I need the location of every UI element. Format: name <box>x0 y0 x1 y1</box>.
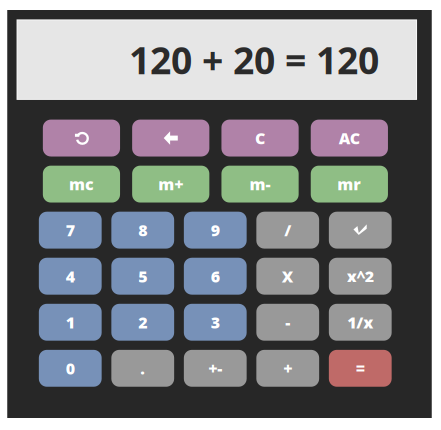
button[interactable]: x^2 <box>329 258 392 295</box>
staticText: x^2 <box>347 266 374 287</box>
staticText: = <box>356 358 365 379</box>
button[interactable]: X <box>256 258 319 295</box>
staticText: 5 <box>138 266 147 287</box>
staticText: 8 <box>138 219 147 241</box>
staticText: 2 <box>138 312 147 333</box>
button[interactable]: . <box>111 350 174 387</box>
button[interactable]: mc <box>43 166 120 203</box>
button[interactable]: 1/x <box>329 304 392 341</box>
button[interactable]: 0 <box>39 350 102 387</box>
button[interactable]: + <box>256 350 319 387</box>
staticText: mr <box>337 173 361 195</box>
staticText: 3 <box>211 312 220 333</box>
staticText: 7 <box>66 219 75 241</box>
button[interactable]: m+ <box>132 166 209 203</box>
button[interactable]: 3 <box>184 304 247 341</box>
button[interactable]: Delete <box>132 120 209 156</box>
button[interactable]: - <box>256 304 319 341</box>
staticText: / <box>284 219 291 241</box>
button[interactable]: +- <box>184 350 247 387</box>
staticText: X <box>282 266 294 287</box>
staticText: 4 <box>66 266 75 287</box>
button[interactable]: 6 <box>184 258 247 295</box>
staticText: mc <box>69 173 94 195</box>
button[interactable]: 2 <box>111 304 174 341</box>
button[interactable]: = <box>329 350 392 387</box>
staticText: m+ <box>158 173 183 195</box>
staticText: +- <box>208 358 222 379</box>
button[interactable]: 1 <box>39 304 102 341</box>
staticText: 6 <box>211 266 220 287</box>
staticText: m- <box>249 173 270 195</box>
staticText: 1/x <box>347 312 373 333</box>
button[interactable]: / <box>256 212 319 249</box>
button[interactable]: mr <box>311 166 388 203</box>
button[interactable]: C <box>221 120 299 156</box>
button[interactable]: 7 <box>39 212 102 249</box>
staticText: . <box>140 358 145 379</box>
button[interactable]: Undo <box>43 120 120 156</box>
button[interactable]: 8 <box>111 212 174 249</box>
staticText: 9 <box>211 219 220 241</box>
staticText: + <box>283 358 292 379</box>
button[interactable]: 5 <box>111 258 174 295</box>
button[interactable]: 9 <box>184 212 247 249</box>
button[interactable]: 4 <box>39 258 102 295</box>
button[interactable]: m- <box>221 166 299 203</box>
button[interactable]: AC <box>311 120 388 156</box>
staticText: 0 <box>66 358 75 379</box>
staticText: 1 <box>66 312 75 333</box>
button[interactable]: Square root <box>329 212 392 249</box>
staticText: AC <box>339 127 360 149</box>
staticText: 120 + 20 = 120 <box>129 35 379 84</box>
staticText: - <box>285 312 290 333</box>
staticText: C <box>255 127 265 149</box>
